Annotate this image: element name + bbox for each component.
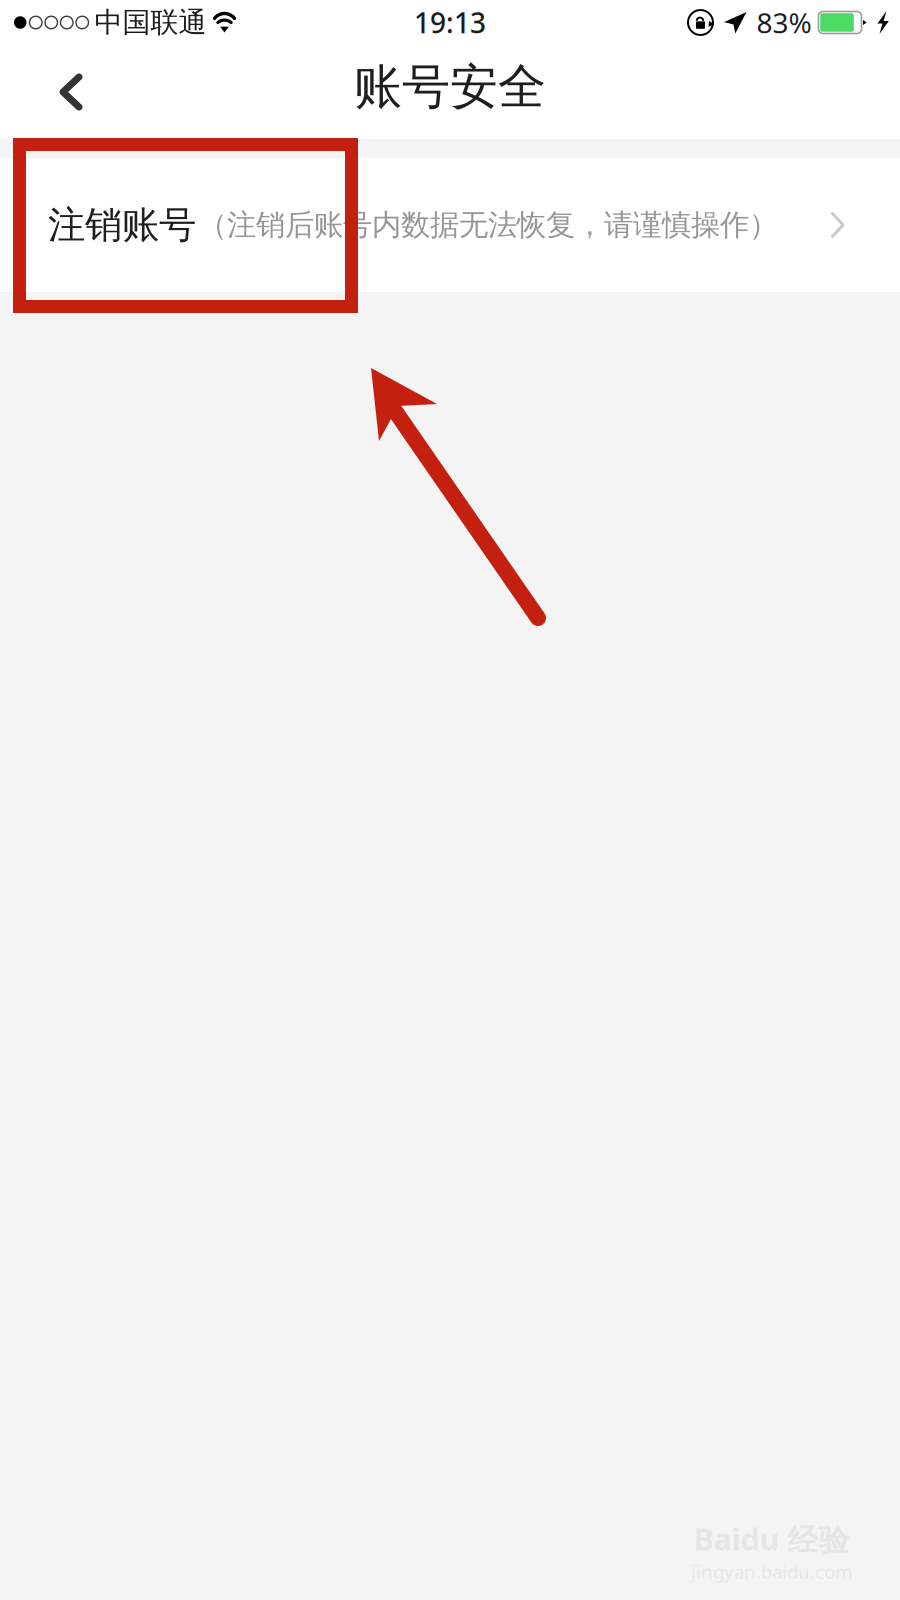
- staticText: jingyan.baidu.com: [691, 1559, 852, 1584]
- staticText: Baidu 经验: [693, 1518, 849, 1559]
- staticText: 账号安全: [354, 57, 546, 116]
- staticText: （注销后账号内数据无法恢复，请谨慎操作）: [198, 207, 778, 243]
- staticText: 83%: [756, 4, 811, 41]
- staticText: 19:13: [414, 4, 486, 41]
- staticText: 注销账号: [48, 202, 196, 248]
- button[interactable]: Back: [0, 49, 119, 135]
- staticText: 中国联通: [94, 5, 206, 40]
- button[interactable]: 注销账号: [0, 158, 900, 292]
